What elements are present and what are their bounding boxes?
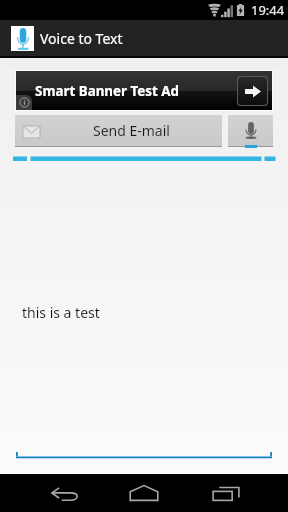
staticText: Voice to Text <box>40 29 123 48</box>
button[interactable]: Back <box>37 474 91 512</box>
button[interactable]: Home <box>117 474 171 512</box>
button[interactable]: Send E-mail <box>15 115 222 146</box>
staticText: Send E-mail <box>93 121 170 140</box>
staticText: this is a test <box>22 303 100 322</box>
staticText: Smart Banner Test Ad <box>35 82 180 100</box>
button[interactable]: Smart Banner Test Ad <box>16 71 272 110</box>
staticText: 19:44 <box>251 1 285 19</box>
button[interactable]: Open ad <box>238 77 267 105</box>
button[interactable]: Speak <box>228 115 273 146</box>
button[interactable]: Recents <box>199 474 253 512</box>
